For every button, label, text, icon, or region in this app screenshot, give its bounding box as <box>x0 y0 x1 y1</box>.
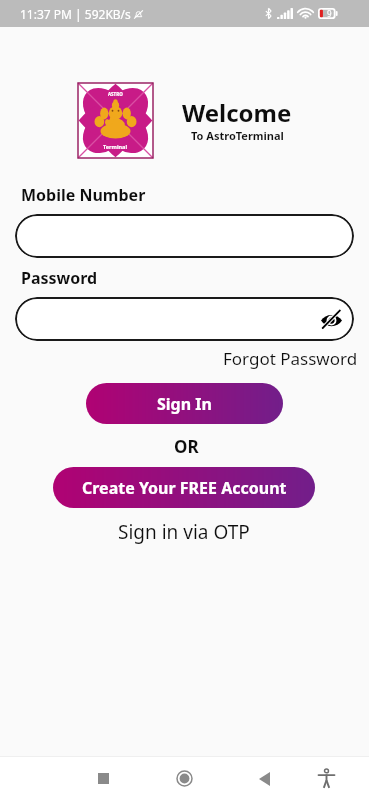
staticText: Terminal <box>103 143 128 150</box>
button[interactable]: Forgot Password <box>223 347 358 370</box>
staticText: Mobile Number <box>21 184 146 206</box>
staticText: 11:37 PM | 592KB/s <box>20 6 131 22</box>
button[interactable]: Home <box>163 757 206 800</box>
button[interactable]: Back <box>243 757 286 800</box>
staticText: 9 <box>327 8 332 19</box>
staticText: Sign in via OTP <box>118 519 250 545</box>
staticText: Password <box>21 267 98 289</box>
button[interactable]: Recent apps <box>82 757 125 800</box>
staticText: ASTRO <box>108 91 123 97</box>
staticText: To AstroTerminal <box>191 128 284 143</box>
staticText: Create Your FREE Account <box>82 477 287 499</box>
button[interactable]: Create Your FREE Account <box>53 467 315 508</box>
button[interactable]: Toggle password visibility <box>15 297 354 341</box>
staticText: Forgot Password <box>223 347 358 370</box>
staticText: Welcome <box>182 96 292 129</box>
staticText: OR <box>174 435 199 458</box>
button[interactable]: Toggle password visibility <box>318 306 344 332</box>
button[interactable] <box>15 214 354 258</box>
button[interactable]: Accessibility <box>305 757 348 800</box>
staticText: Sign In <box>157 393 212 415</box>
button[interactable]: Sign in via OTP <box>118 519 250 545</box>
button[interactable]: Sign In <box>86 383 283 424</box>
